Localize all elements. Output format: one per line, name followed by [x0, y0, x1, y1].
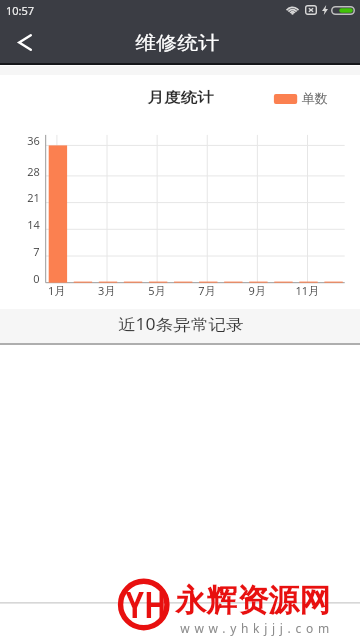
button[interactable]: Back [3, 21, 46, 63]
button[interactable] [0, 309, 360, 343]
staticText: 10:57 [6, 3, 35, 18]
